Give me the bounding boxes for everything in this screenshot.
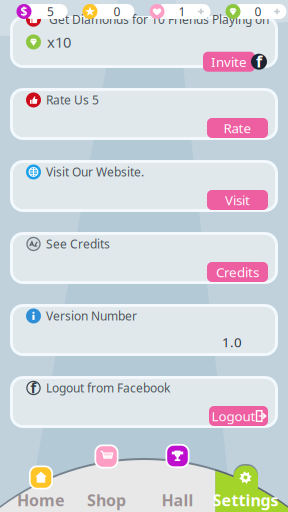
staticText: Visit Our Website. <box>46 164 144 180</box>
button[interactable]: 1 <box>149 4 210 19</box>
staticText: Credits <box>216 263 259 281</box>
staticText: Rate Us 5 <box>46 92 99 108</box>
staticText: Invite <box>211 53 247 71</box>
staticText: Version Number <box>46 308 137 324</box>
staticText: Visit <box>225 191 250 209</box>
button[interactable]: Home <box>0 0 288 512</box>
button[interactable]: Visit <box>207 190 268 210</box>
button[interactable]: Settings <box>0 0 288 512</box>
staticText: Logout <box>211 407 255 425</box>
staticText: Shop <box>87 489 126 511</box>
button[interactable]: Shop <box>0 0 288 512</box>
staticText: See Credits <box>46 236 110 252</box>
staticText: Hall <box>161 489 193 511</box>
button[interactable]: 0 <box>82 4 134 19</box>
staticText: f <box>30 378 36 397</box>
staticText: Settings <box>212 489 278 511</box>
button[interactable]: Credits <box>207 262 268 282</box>
staticText: x10 <box>47 32 71 52</box>
staticText: f <box>256 51 262 72</box>
staticText: $ <box>20 3 27 19</box>
button[interactable]: Logout <box>209 406 268 426</box>
staticText: Home <box>17 489 65 511</box>
staticText: 1.0 <box>222 333 242 351</box>
button[interactable]: Invite <box>203 52 267 72</box>
staticText: Logout from Facebook <box>46 380 170 396</box>
staticText: 5 <box>47 3 54 19</box>
staticText: Get Diamonds for 10 Friends Playing on <box>49 11 269 27</box>
button[interactable]: Rate <box>207 118 268 138</box>
staticText: Rate <box>223 119 251 137</box>
staticText: 0 <box>113 3 120 19</box>
button[interactable]: 5 <box>16 4 67 19</box>
staticText: 0 <box>254 3 261 19</box>
staticText: 1 <box>178 3 185 19</box>
button[interactable]: 0 <box>225 4 286 19</box>
button[interactable]: Hall <box>0 0 288 512</box>
